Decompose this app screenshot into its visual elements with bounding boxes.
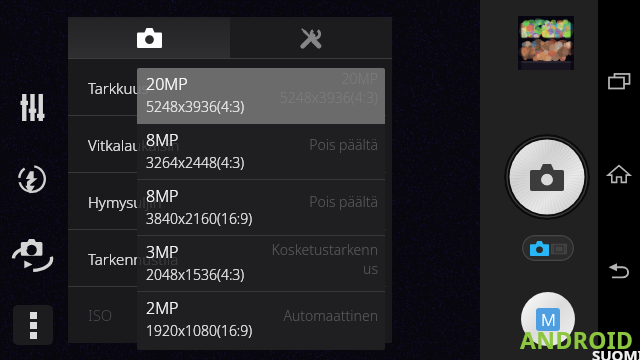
button[interactable]: ISO [68,287,392,343]
staticText: Pois päältä [268,135,378,154]
staticText: Pois päältä [268,192,378,211]
staticText: M [541,308,556,331]
button[interactable]: Vitkalaukaisin [68,116,392,173]
button[interactable]: Adjust settings [20,94,45,121]
button[interactable]: Hymysuljin [68,173,392,230]
staticText: Tarkkuus [88,78,149,98]
button[interactable]: Home [607,163,631,185]
staticText: Kosketustarkennus [268,240,378,278]
button[interactable]: 8MP [137,124,385,180]
button[interactable]: Back [607,258,632,280]
staticText: 3840x2160(16:9) [146,209,253,228]
button[interactable]: Switch photo video mode [522,235,574,261]
staticText: Automaattinen [268,306,378,325]
other: Camera settings tab [137,28,162,48]
staticText: 3MP [146,241,179,263]
staticText: Tarkennustila [88,249,179,269]
staticText: Pois päältä [268,192,378,211]
staticText: Hymysuljin [88,192,162,212]
staticText: Tarkkuus [88,78,149,98]
staticText: ANDROID [520,324,634,355]
staticText: 8MP [146,185,179,207]
staticText: Vitkalaukaisin [88,135,180,155]
button[interactable]: Switch camera [13,239,52,268]
other: General settings tab [300,27,322,49]
button[interactable]: Gallery [518,16,574,70]
staticText: Automaattinen [268,306,378,325]
staticText: 8MP [146,129,179,151]
staticText: Tarkennustila [88,249,179,269]
staticText: 2048x1536(4:3) [146,265,245,284]
staticText: 1920x1080(16:9) [146,321,253,340]
staticText: Kosketustarkennus [268,240,378,278]
staticText: 20MP 5248x3936(4:3) [268,69,378,107]
button[interactable]: 2MP [137,292,385,348]
button[interactable]: 3MP [137,236,385,292]
button[interactable]: Camera settings tab [68,17,230,58]
button[interactable]: Tarkennustila [68,230,392,287]
staticText: ISO [88,305,113,325]
staticText: 2MP [146,297,179,319]
staticText: SUOMI [592,345,640,360]
staticText: ISO [88,305,113,325]
button[interactable]: Manual mode [521,292,575,346]
staticText: Vitkalaukaisin [88,135,180,155]
staticText: 20MP 5248x3936(4:3) [268,69,378,107]
staticText: 3264x2448(4:3) [146,153,245,172]
button[interactable]: Take photo [504,134,590,220]
button[interactable]: 20MP [137,68,385,124]
button[interactable]: 8MP [137,180,385,236]
button[interactable]: More options [13,305,53,345]
button[interactable]: General settings tab [230,17,392,58]
staticText: 20MP [146,73,188,95]
staticText: Pois päältä [268,135,378,154]
staticText: Hymysuljin [88,192,162,212]
button[interactable]: Flash mode [18,165,46,193]
button[interactable]: Recent apps [607,70,632,92]
staticText: 5248x3936(4:3) [146,97,245,116]
button[interactable]: Tarkkuus [68,59,392,116]
